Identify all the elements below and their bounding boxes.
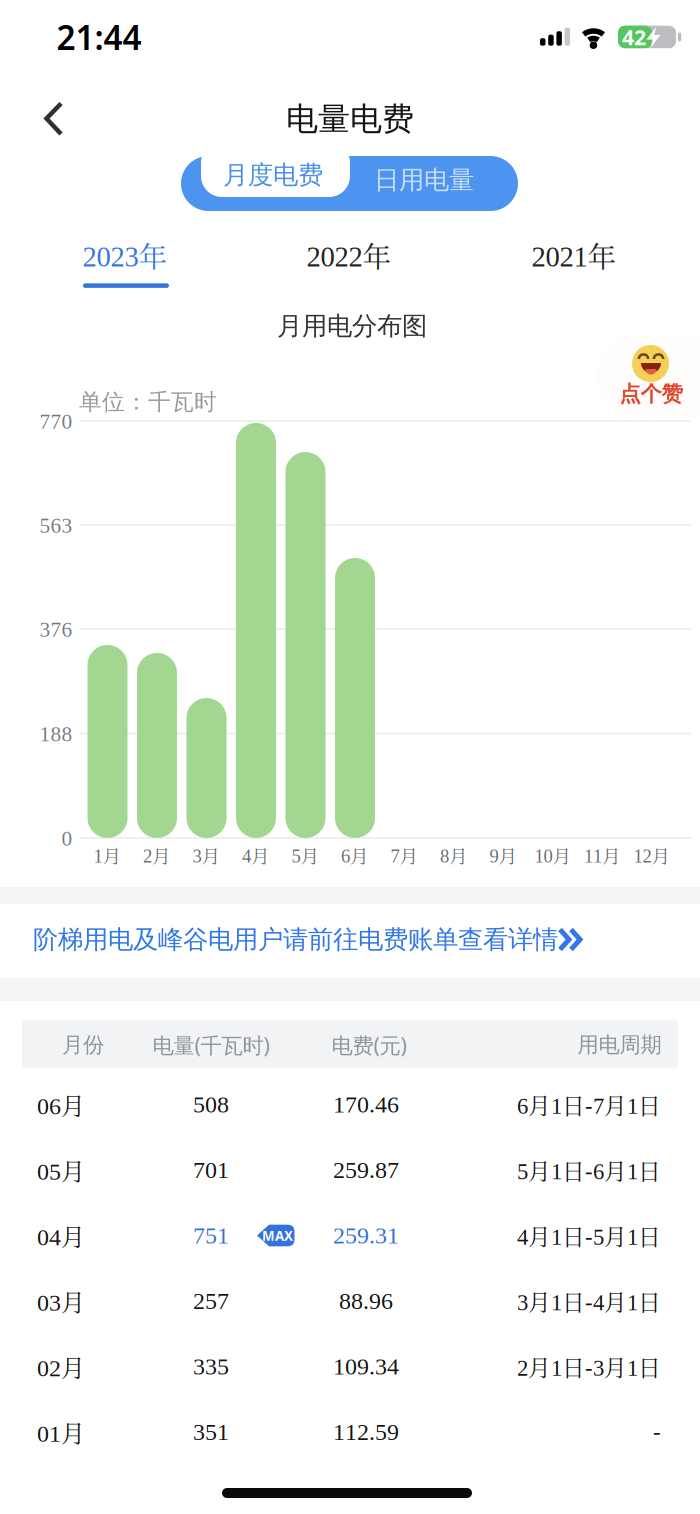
staticText: 257 (193, 1288, 229, 1314)
staticText: 月度电费 (223, 159, 323, 190)
staticText: 0 (61, 827, 72, 850)
staticText: 508 (193, 1091, 229, 1118)
staticText: 259.87 (333, 1157, 399, 1183)
staticText: - (653, 1419, 661, 1444)
staticText: 170.46 (333, 1091, 399, 1118)
staticText: 06月 (37, 1087, 85, 1122)
staticText: 电量(千瓦时) (152, 1031, 269, 1059)
staticText: 单位：千瓦时 (79, 388, 217, 416)
staticText: 188 (39, 722, 72, 746)
staticText: 563 (39, 514, 72, 537)
staticText: 2月 (143, 842, 171, 868)
staticText: 01月 (37, 1415, 85, 1449)
staticText: 4月 (242, 842, 270, 868)
staticText: 42 (622, 23, 646, 51)
staticText: 112.59 (333, 1419, 399, 1445)
staticText: 11月 (584, 842, 621, 868)
staticText: 335 (193, 1353, 229, 1380)
staticText: 02月 (37, 1349, 85, 1384)
staticText: 6月1日-7月1日 (517, 1088, 661, 1121)
staticText: 电费(元) (331, 1031, 406, 1059)
staticText: 月用电分布图 (277, 310, 427, 341)
staticText: 88.96 (339, 1288, 393, 1314)
staticText: 5月1日-6月1日 (517, 1154, 661, 1186)
staticText: 3月 (192, 842, 220, 868)
staticText: MAX (262, 1227, 293, 1244)
staticText: 109.34 (333, 1353, 399, 1380)
staticText: 04月 (37, 1218, 85, 1253)
staticText: 阶梯用电及峰谷电用户请前往电费账单查看详情 (33, 924, 558, 955)
staticText: 376 (39, 618, 72, 641)
staticText: 6月 (341, 842, 369, 868)
staticText: 月份 (62, 1032, 104, 1058)
staticText: 259.31 (333, 1222, 399, 1249)
staticText: 12月 (633, 842, 670, 868)
staticText: 701 (193, 1157, 229, 1183)
staticText: 日用电量 (374, 164, 474, 195)
staticText: 05月 (37, 1153, 85, 1187)
staticText: 2月1日-3月1日 (517, 1350, 661, 1383)
staticText: 2023年 (82, 234, 167, 276)
staticText: 1月 (93, 842, 121, 868)
staticText: 2021年 (531, 234, 616, 276)
staticText: 7月 (390, 842, 418, 868)
staticText: 电量电费 (286, 99, 414, 139)
staticText: 21:44 (56, 15, 141, 59)
staticText: 用电周期 (577, 1032, 661, 1058)
staticText: 4月1日-5月1日 (517, 1219, 661, 1252)
staticText: 8月 (440, 842, 468, 868)
staticText: 751 (193, 1222, 229, 1249)
staticText: 9月 (489, 842, 517, 868)
staticText: 2022年 (306, 234, 391, 276)
staticText: 770 (39, 410, 72, 433)
staticText: 点个赞 (619, 381, 682, 407)
staticText: 03月 (37, 1284, 85, 1318)
staticText: 10月 (534, 842, 571, 868)
staticText: 3月1日-4月1日 (517, 1285, 661, 1317)
staticText: 351 (193, 1419, 229, 1445)
staticText: 5月 (291, 842, 319, 868)
